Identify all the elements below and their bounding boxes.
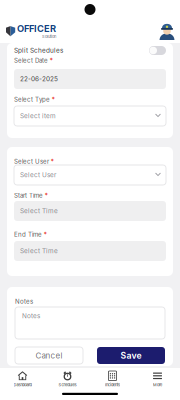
staticText: Select Time bbox=[20, 247, 58, 255]
staticText: Notes bbox=[22, 312, 40, 320]
button[interactable]: 22-06-2025 bbox=[14, 69, 166, 89]
button[interactable]: Select Time bbox=[14, 201, 166, 221]
staticText: Select item bbox=[20, 112, 56, 120]
staticText: Save bbox=[120, 350, 141, 361]
staticText: OFFICER bbox=[17, 23, 56, 34]
staticText: Solution bbox=[42, 34, 56, 39]
staticText: Notes bbox=[15, 298, 33, 305]
staticText: Split Schedules bbox=[14, 47, 63, 54]
staticText: * bbox=[51, 96, 55, 103]
button[interactable]: Schedules bbox=[45, 367, 90, 390]
staticText: * bbox=[49, 57, 53, 64]
staticText: Incidents bbox=[105, 382, 120, 387]
staticText: Select User bbox=[14, 158, 49, 165]
button[interactable]: Incidents bbox=[90, 367, 135, 390]
staticText: More bbox=[153, 382, 162, 387]
staticText: Start Time bbox=[14, 192, 43, 199]
staticText: Select Date bbox=[14, 57, 48, 64]
staticText: Cancel bbox=[35, 351, 62, 360]
button[interactable]: Notes bbox=[15, 307, 165, 339]
button[interactable]: Cancel bbox=[15, 347, 83, 364]
staticText: Select User bbox=[20, 171, 56, 179]
button[interactable]: Select item bbox=[14, 106, 166, 126]
staticText: Select Time bbox=[20, 207, 58, 215]
button[interactable]: Officer Solution bbox=[6, 23, 56, 39]
button[interactable]: Select User bbox=[14, 165, 166, 185]
staticText: End Time bbox=[14, 231, 42, 238]
staticText: 22-06-2025 bbox=[20, 75, 58, 83]
button[interactable]: Profile bbox=[159, 22, 175, 40]
button[interactable]: More bbox=[135, 367, 180, 390]
staticText: * bbox=[50, 158, 54, 165]
staticText: * bbox=[43, 231, 47, 238]
staticText: Schedules bbox=[58, 382, 76, 387]
button[interactable]: Save bbox=[97, 347, 165, 364]
button[interactable]: Split Schedules bbox=[149, 46, 166, 55]
staticText: Select Type bbox=[14, 96, 50, 103]
staticText: * bbox=[44, 192, 48, 199]
button[interactable]: Select Time bbox=[14, 241, 166, 261]
staticText: Dashboard bbox=[13, 382, 31, 387]
button[interactable]: Dashboard bbox=[0, 367, 45, 390]
